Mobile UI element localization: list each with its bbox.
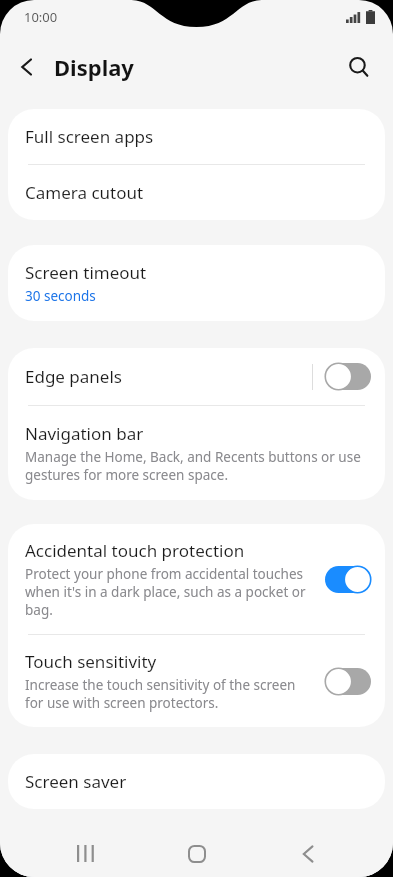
staticText: Increase the touch sensitivity of the sc… — [25, 676, 312, 712]
staticText: Navigation bar — [25, 422, 144, 445]
button[interactable]: Back — [282, 830, 334, 877]
button[interactable]: Accidental touch protection — [8, 524, 385, 634]
staticText: Looking for something else? — [25, 856, 251, 877]
button[interactable]: Screen timeout — [8, 245, 385, 321]
staticText: Screen saver — [25, 770, 127, 793]
staticText: Accidental touch protection — [25, 539, 245, 562]
button[interactable]: Navigation bar — [8, 406, 385, 500]
staticText: Edge panels — [25, 365, 122, 388]
staticText: 10:00 — [24, 8, 58, 26]
button[interactable]: Full screen apps — [8, 109, 385, 164]
staticText: Display — [54, 52, 134, 82]
button[interactable]: Recents — [59, 830, 111, 877]
button[interactable]: Looking for something else? — [8, 832, 385, 877]
button[interactable]: Back — [8, 48, 46, 86]
staticText: Camera cutout — [25, 181, 144, 204]
button[interactable]: Edge panels — [8, 348, 385, 405]
button[interactable]: Home — [171, 830, 223, 877]
staticText: Touch sensitivity — [25, 650, 157, 673]
staticText: Screen timeout — [25, 261, 147, 284]
button[interactable]: Toggle off — [325, 668, 371, 695]
staticText: 30 seconds — [25, 287, 96, 305]
button[interactable]: Search — [337, 45, 381, 89]
button[interactable]: Screen saver — [8, 754, 385, 809]
staticText: Full screen apps — [25, 125, 154, 148]
button[interactable]: Toggle off — [325, 363, 371, 390]
staticText: Protect your phone from accidental touch… — [25, 565, 312, 619]
button[interactable]: Toggle on — [325, 566, 371, 593]
staticText: Manage the Home, Back, and Recents butto… — [25, 448, 365, 484]
button[interactable]: Camera cutout — [8, 165, 385, 220]
button[interactable]: Touch sensitivity — [8, 635, 385, 727]
